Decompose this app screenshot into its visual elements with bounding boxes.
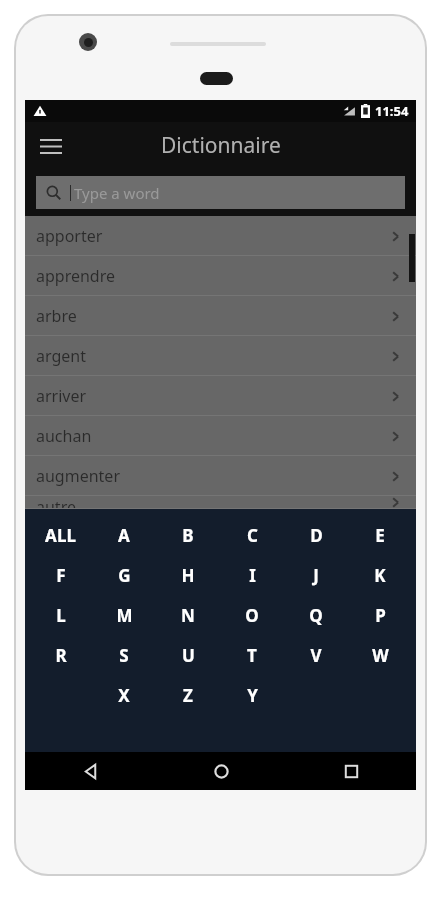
- staticText: C: [247, 524, 258, 547]
- staticText: V: [310, 644, 322, 667]
- staticText: P: [375, 604, 386, 627]
- staticText: T: [247, 644, 257, 667]
- button[interactable]: ALL: [29, 519, 92, 551]
- staticText: B: [182, 524, 194, 547]
- button[interactable]: Q: [284, 599, 348, 631]
- staticText: Q: [309, 604, 323, 627]
- button[interactable]: arbre: [25, 296, 416, 336]
- button[interactable]: apporter: [25, 216, 416, 256]
- staticText: D: [310, 524, 323, 547]
- button[interactable]: apprendre: [25, 256, 416, 296]
- button[interactable]: arriver: [25, 376, 416, 416]
- staticText: K: [374, 564, 386, 587]
- button[interactable]: P: [348, 599, 412, 631]
- button[interactable]: auchan: [25, 416, 416, 456]
- staticText: X: [118, 684, 130, 707]
- staticText: E: [375, 524, 385, 547]
- staticText: arbre: [36, 305, 77, 327]
- button[interactable]: G: [92, 559, 156, 591]
- staticText: N: [181, 604, 195, 627]
- button[interactable]: Home: [156, 752, 286, 790]
- staticText: R: [55, 644, 67, 667]
- staticText: J: [313, 564, 319, 587]
- staticText: L: [56, 604, 66, 627]
- staticText: autre: [36, 496, 76, 509]
- staticText: H: [181, 564, 195, 587]
- staticText: F: [56, 564, 66, 587]
- staticText: Y: [247, 684, 258, 707]
- staticText: I: [249, 564, 256, 587]
- button[interactable]: Type a word: [36, 176, 405, 209]
- button[interactable]: Y: [220, 679, 284, 711]
- button[interactable]: B: [156, 519, 220, 551]
- button[interactable]: N: [156, 599, 220, 631]
- button[interactable]: A: [92, 519, 156, 551]
- staticText: Type a word: [74, 183, 160, 203]
- staticText: apporter: [36, 225, 103, 247]
- staticText: W: [372, 644, 389, 667]
- button[interactable]: M: [92, 599, 156, 631]
- button[interactable]: O: [220, 599, 284, 631]
- staticText: auchan: [36, 425, 92, 447]
- button[interactable]: U: [156, 639, 220, 671]
- button[interactable]: argent: [25, 336, 416, 376]
- button[interactable]: S: [92, 639, 156, 671]
- button[interactable]: D: [284, 519, 348, 551]
- button[interactable]: augmenter: [25, 456, 416, 496]
- staticText: O: [245, 604, 259, 627]
- staticText: Z: [183, 684, 193, 707]
- staticText: 11:54: [375, 102, 409, 120]
- button[interactable]: W: [348, 639, 412, 671]
- staticText: S: [119, 644, 129, 667]
- button[interactable]: I: [220, 559, 284, 591]
- staticText: A: [118, 524, 130, 547]
- button[interactable]: V: [284, 639, 348, 671]
- staticText: apprendre: [36, 265, 116, 287]
- button[interactable]: autre: [25, 496, 416, 509]
- button[interactable]: L: [29, 599, 92, 631]
- staticText: ALL: [45, 524, 76, 547]
- staticText: argent: [36, 345, 86, 367]
- button[interactable]: Back: [25, 752, 156, 790]
- staticText: Dictionnaire: [161, 131, 281, 160]
- button[interactable]: E: [348, 519, 412, 551]
- staticText: augmenter: [36, 465, 120, 487]
- button[interactable]: T: [220, 639, 284, 671]
- staticText: arriver: [36, 385, 87, 407]
- staticText: U: [182, 644, 195, 667]
- button[interactable]: K: [348, 559, 412, 591]
- button[interactable]: H: [156, 559, 220, 591]
- staticText: G: [118, 564, 131, 587]
- button[interactable]: F: [29, 559, 92, 591]
- button[interactable]: R: [29, 639, 92, 671]
- button[interactable]: X: [92, 679, 156, 711]
- button[interactable]: J: [284, 559, 348, 591]
- button[interactable]: Z: [156, 679, 220, 711]
- button[interactable]: Recent apps: [286, 752, 416, 790]
- button[interactable]: Open navigation menu: [33, 128, 69, 164]
- staticText: M: [116, 604, 133, 627]
- button[interactable]: C: [220, 519, 284, 551]
